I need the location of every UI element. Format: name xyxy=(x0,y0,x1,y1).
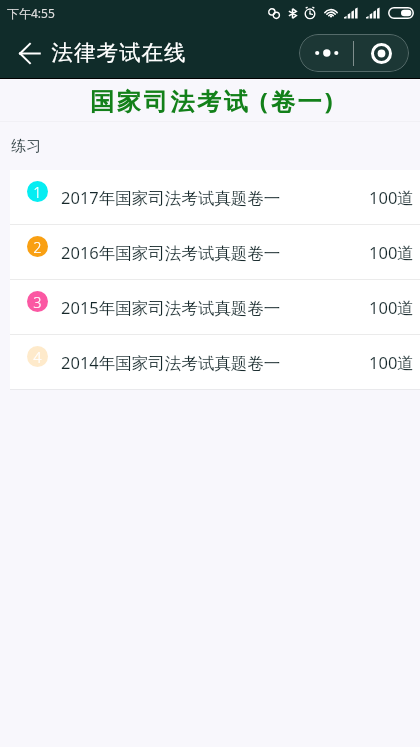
button[interactable]: 1 xyxy=(10,170,420,224)
staticText: 4 xyxy=(33,347,42,367)
staticText: 1 xyxy=(33,182,42,202)
button[interactable]: Close xyxy=(354,34,409,72)
button[interactable]: 2 xyxy=(10,225,420,279)
staticText: 国家司法考试 (卷一) xyxy=(90,84,336,117)
staticText: 2 xyxy=(33,237,42,257)
staticText: 练习 xyxy=(11,137,41,156)
staticText: 2015年国家司法考试真题卷一 xyxy=(61,296,369,319)
button[interactable]: More options xyxy=(299,34,353,72)
staticText: 100道 xyxy=(369,241,414,264)
staticText: 3 xyxy=(33,292,42,312)
button[interactable]: Back xyxy=(7,31,51,75)
staticText: 2016年国家司法考试真题卷一 xyxy=(61,241,369,264)
button[interactable]: 4 xyxy=(10,335,420,389)
staticText: 下午4:55 xyxy=(7,5,55,21)
staticText: 法律考试在线 xyxy=(51,39,186,66)
staticText: 100道 xyxy=(369,351,414,374)
staticText: 2017年国家司法考试真题卷一 xyxy=(61,186,369,209)
staticText: 100道 xyxy=(369,296,414,319)
staticText: 100道 xyxy=(369,186,414,209)
staticText: 2014年国家司法考试真题卷一 xyxy=(61,351,369,374)
button[interactable]: 3 xyxy=(10,280,420,334)
